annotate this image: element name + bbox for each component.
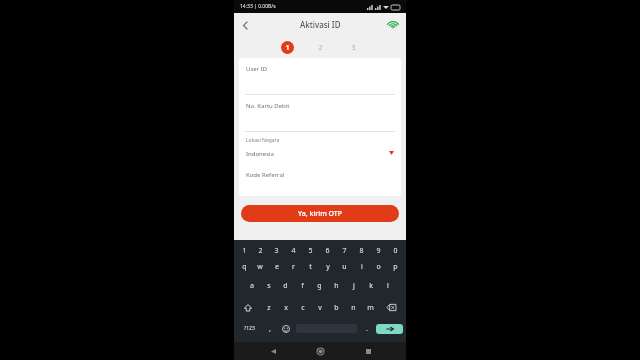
button[interactable]: 1	[236, 243, 252, 259]
staticText: q	[242, 262, 247, 272]
staticText: n	[351, 303, 356, 313]
staticText: 2	[258, 246, 263, 256]
button[interactable]: 6	[319, 243, 336, 259]
button[interactable]: f	[294, 275, 311, 297]
staticText: 14:33 | 0.00B/s	[240, 3, 276, 10]
staticText: l	[387, 281, 389, 291]
staticText: p	[393, 262, 398, 272]
button[interactable]: b	[328, 297, 345, 318]
staticText: 5	[308, 246, 313, 256]
button[interactable]: Emoji	[278, 318, 294, 339]
staticText: w	[257, 262, 263, 272]
staticText: Kode Referral	[246, 171, 285, 179]
button[interactable]: a	[243, 275, 260, 297]
button[interactable]: Kode Referral	[239, 164, 401, 196]
staticText: 1	[285, 43, 290, 53]
button[interactable]: h	[328, 275, 345, 297]
staticText: o	[376, 262, 381, 272]
staticText: c	[301, 303, 305, 313]
staticText: d	[283, 281, 288, 291]
staticText: a	[250, 281, 254, 291]
staticText: ,	[269, 324, 271, 334]
button[interactable]: Back	[264, 342, 282, 360]
staticText: j	[353, 281, 355, 291]
staticText: g	[317, 281, 322, 291]
button[interactable]: ?123	[236, 318, 262, 339]
staticText: h	[334, 281, 339, 291]
button[interactable]: 0	[387, 243, 404, 259]
staticText: 9	[376, 246, 381, 256]
button[interactable]: d	[277, 275, 294, 297]
button[interactable]: 5	[302, 243, 319, 259]
button[interactable]: e	[268, 259, 285, 275]
button[interactable]: 4	[285, 243, 302, 259]
staticText: 7	[342, 246, 347, 256]
button[interactable]: r	[285, 259, 302, 275]
button[interactable]: 3	[347, 41, 360, 54]
button[interactable]: 2	[314, 41, 327, 54]
staticText: i	[361, 262, 363, 272]
staticText: s	[267, 281, 271, 291]
button[interactable]: n	[345, 297, 362, 318]
staticText: Aktivasi ID	[300, 19, 341, 30]
staticText: Ya, kirim OTP	[298, 209, 343, 219]
staticText: m	[367, 303, 374, 313]
staticText: 3	[274, 246, 279, 256]
button[interactable]: 8	[353, 243, 370, 259]
button[interactable]: 2	[252, 243, 268, 259]
button[interactable]: p	[387, 259, 404, 275]
button[interactable]: .	[359, 318, 375, 339]
button[interactable]: Enter	[376, 324, 403, 334]
button[interactable]: Recents	[359, 342, 377, 360]
button[interactable]: w	[252, 259, 268, 275]
staticText: 3	[351, 43, 356, 53]
staticText: 6	[325, 246, 330, 256]
staticText: 1	[242, 246, 247, 256]
button[interactable]: s	[260, 275, 277, 297]
button[interactable]: o	[370, 259, 387, 275]
button[interactable]: Home	[311, 342, 329, 360]
staticText: No. Kartu Debit	[246, 102, 290, 110]
button[interactable]: l	[379, 275, 396, 297]
button[interactable]: c	[294, 297, 311, 318]
button[interactable]: y	[319, 259, 336, 275]
button[interactable]: u	[336, 259, 353, 275]
staticText: 8	[359, 246, 364, 256]
button[interactable]: Back	[234, 14, 256, 36]
button[interactable]: Wifi status	[386, 18, 400, 32]
button[interactable]: k	[362, 275, 379, 297]
button[interactable]: t	[302, 259, 319, 275]
button[interactable]: g	[311, 275, 328, 297]
button[interactable]: q	[236, 259, 252, 275]
button[interactable]: 3	[268, 243, 285, 259]
staticText: v	[318, 303, 322, 313]
staticText: 0	[393, 246, 398, 256]
staticText: z	[267, 303, 271, 313]
button[interactable]: x	[277, 297, 294, 318]
staticText: Indonesia	[246, 150, 274, 158]
button[interactable]: Lokasi Negara	[239, 132, 401, 164]
staticText: f	[301, 281, 304, 291]
button[interactable]: User ID	[239, 58, 401, 94]
button[interactable]: j	[345, 275, 362, 297]
button[interactable]: z	[260, 297, 277, 318]
staticText: e	[275, 262, 279, 272]
button[interactable]: v	[311, 297, 328, 318]
button[interactable]: Ya, kirim OTP	[241, 205, 399, 222]
button[interactable]: i	[353, 259, 370, 275]
button[interactable]: Shift	[236, 297, 260, 318]
staticText: y	[326, 262, 330, 272]
staticText: User ID	[246, 65, 268, 73]
button[interactable]: No. Kartu Debit	[239, 95, 401, 131]
staticText: b	[334, 303, 339, 313]
staticText: ?123	[244, 325, 255, 332]
staticText: t	[309, 262, 312, 272]
button[interactable]: 9	[370, 243, 387, 259]
staticText: x	[284, 303, 288, 313]
button[interactable]: 1	[281, 41, 294, 54]
button[interactable]: m	[362, 297, 379, 318]
button[interactable]: Backspace	[379, 297, 404, 318]
button[interactable]: ,	[262, 318, 278, 339]
button[interactable]: 7	[336, 243, 353, 259]
